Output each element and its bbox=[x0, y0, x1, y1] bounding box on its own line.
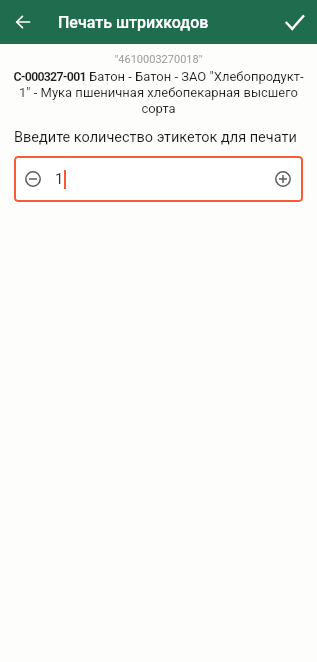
staticText: 1 bbox=[55, 170, 64, 188]
staticText: Введите количество этикеток для печати bbox=[14, 129, 297, 146]
button[interactable]: Increase quantity bbox=[266, 162, 300, 196]
staticText: Печать штрихкодов bbox=[58, 13, 209, 32]
button[interactable]: Back bbox=[0, 0, 44, 44]
staticText: C-000327-001 Батон - Батон - ЗАО "Хлебоп… bbox=[0, 69, 317, 116]
button[interactable]: 1 bbox=[55, 156, 266, 202]
staticText: "4610003270018" bbox=[0, 53, 317, 66]
button[interactable]: Decrease quantity bbox=[16, 162, 50, 196]
button[interactable]: Confirm bbox=[273, 0, 317, 44]
